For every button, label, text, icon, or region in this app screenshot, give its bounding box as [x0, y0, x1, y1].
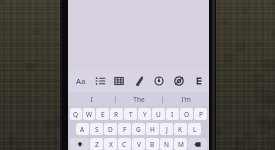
button[interactable]: A: [76, 123, 89, 135]
button[interactable]: Shift: [70, 138, 89, 150]
button[interactable]: W: [83, 108, 95, 120]
button[interactable]: H: [146, 123, 159, 135]
button[interactable]: I: [68, 92, 115, 106]
staticText: K: [178, 125, 183, 134]
staticText: Y: [143, 110, 147, 119]
button[interactable]: I'm: [163, 92, 209, 106]
button[interactable]: K: [174, 123, 187, 135]
staticText: H: [150, 125, 155, 134]
button[interactable]: S: [90, 123, 103, 135]
staticText: The: [133, 95, 145, 104]
button[interactable]: Y: [138, 108, 151, 120]
button[interactable]: N: [160, 138, 173, 150]
button[interactable]: V: [132, 138, 145, 150]
button[interactable]: Text format: [71, 70, 90, 92]
staticText: W: [86, 110, 93, 119]
staticText: Z: [95, 140, 99, 149]
button[interactable]: Bold: [189, 70, 209, 92]
button[interactable]: The: [116, 92, 162, 106]
button[interactable]: U: [152, 108, 165, 120]
button[interactable]: I: [166, 108, 179, 120]
button[interactable]: Z: [90, 138, 103, 150]
button[interactable]: G: [132, 123, 145, 135]
button[interactable]: F: [118, 123, 131, 135]
button[interactable]: P: [194, 108, 207, 120]
staticText: D: [108, 125, 113, 134]
button[interactable]: E: [96, 108, 109, 120]
staticText: L: [193, 125, 197, 134]
staticText: O: [184, 110, 190, 119]
button[interactable]: Camera: [169, 70, 189, 92]
staticText: C: [122, 140, 127, 149]
button[interactable]: T: [124, 108, 137, 120]
staticText: U: [156, 110, 161, 119]
staticText: J: [166, 125, 168, 134]
button[interactable]: O: [180, 108, 193, 120]
staticText: T: [129, 110, 133, 119]
button[interactable]: Backspace: [188, 138, 207, 150]
button[interactable]: M: [174, 138, 187, 150]
staticText: S: [95, 125, 99, 134]
button[interactable]: Record audio: [149, 70, 169, 92]
staticText: I: [171, 110, 174, 119]
staticText: G: [136, 125, 141, 134]
staticText: I: [90, 95, 93, 104]
staticText: R: [114, 110, 119, 119]
staticText: E: [101, 110, 105, 119]
staticText: B: [150, 140, 155, 149]
button[interactable]: B: [146, 138, 159, 150]
staticText: X: [109, 140, 113, 149]
button[interactable]: L: [188, 123, 201, 135]
staticText: A: [80, 125, 85, 134]
staticText: M: [178, 140, 184, 149]
staticText: N: [164, 140, 169, 149]
button[interactable]: Q: [70, 108, 82, 120]
staticText: Aa: [76, 76, 86, 86]
button[interactable]: Bulleted list: [90, 70, 109, 92]
button[interactable]: C: [118, 138, 131, 150]
staticText: F: [123, 125, 127, 134]
button[interactable]: Attach file: [129, 70, 149, 92]
button[interactable]: X: [104, 138, 117, 150]
button[interactable]: D: [104, 123, 117, 135]
button[interactable]: Table: [109, 70, 129, 92]
staticText: V: [137, 140, 141, 149]
button[interactable]: R: [110, 108, 123, 120]
staticText: Q: [73, 110, 79, 119]
staticText: P: [199, 110, 203, 119]
staticText: I'm: [181, 95, 191, 104]
button[interactable]: J: [160, 123, 173, 135]
